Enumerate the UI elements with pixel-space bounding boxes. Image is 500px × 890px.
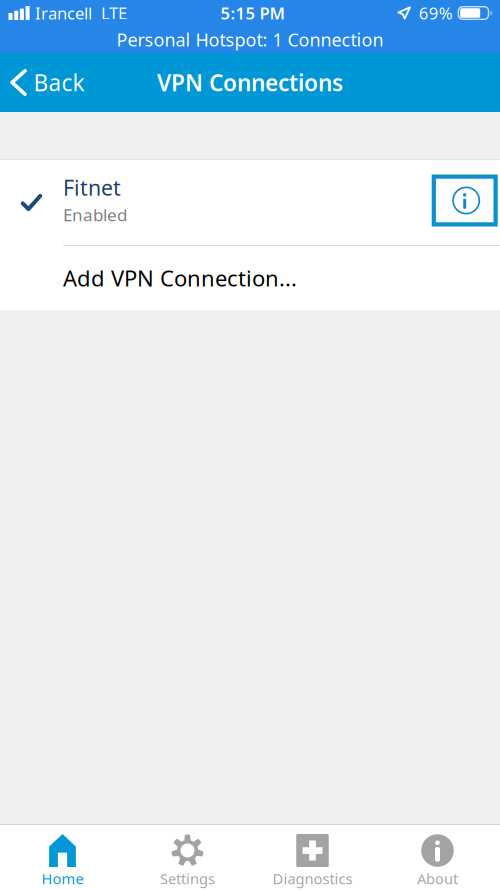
button[interactable]: About	[375, 825, 500, 890]
button[interactable]: Fitnet details	[432, 174, 498, 226]
staticText: Fitnet	[63, 173, 121, 202]
staticText: 69%	[419, 2, 453, 24]
staticText: Settings	[160, 868, 215, 888]
button[interactable]: Add VPN Connection...	[0, 246, 500, 310]
staticText: Irancell	[35, 2, 92, 24]
staticText: About	[417, 868, 458, 888]
button[interactable]: Back	[0, 53, 96, 112]
button[interactable]: Fitnet	[0, 160, 500, 245]
staticText: Back	[33, 67, 84, 98]
staticText: Enabled	[63, 203, 127, 226]
staticText: LTE	[101, 2, 127, 24]
staticText: Personal Hotspot: 1 Connection	[116, 27, 383, 52]
button[interactable]: Home	[0, 825, 125, 890]
staticText: Diagnostics	[272, 868, 352, 888]
staticText: Add VPN Connection...	[63, 263, 297, 293]
button[interactable]: Settings	[125, 825, 250, 890]
staticText: 5:15 PM	[220, 2, 284, 24]
staticText: VPN Connections	[157, 67, 343, 98]
staticText: Home	[41, 868, 83, 888]
button[interactable]: Diagnostics	[250, 825, 375, 890]
